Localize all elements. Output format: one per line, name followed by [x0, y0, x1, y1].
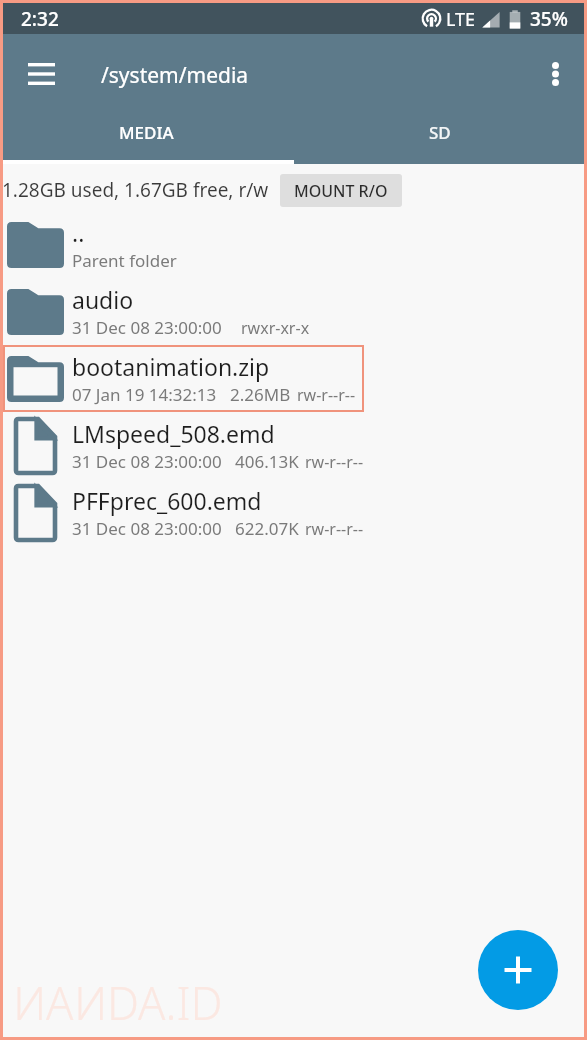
staticText: LTE: [446, 7, 476, 32]
button[interactable]: bootanimation.zip: [0, 345, 587, 412]
staticText: LMspeed_508.emd: [72, 418, 275, 449]
button[interactable]: More options: [532, 48, 578, 94]
staticText: A: [46, 972, 74, 1033]
staticText: 31 Dec 08 23:00:00: [72, 316, 222, 339]
button[interactable]: Menu: [18, 48, 64, 94]
staticText: N: [13, 972, 46, 1033]
staticText: PFFprec_600.emd: [72, 485, 262, 516]
staticText: rwxr-xr-x: [241, 317, 310, 339]
staticText: SD: [429, 121, 451, 144]
staticText: MOUNT R/O: [294, 180, 388, 202]
staticText: bootanimation.zip: [72, 351, 270, 382]
staticText: 1.28GB used, 1.67GB free, r/w: [2, 177, 269, 203]
staticText: ..: [72, 217, 85, 248]
staticText: 406.13K: [235, 450, 299, 473]
button[interactable]: MEDIA: [0, 104, 293, 160]
staticText: N: [74, 972, 107, 1033]
staticText: 2:32: [21, 6, 59, 32]
button[interactable]: MOUNT R/O: [280, 174, 402, 207]
staticText: 07 Jan 19 14:32:13: [72, 383, 217, 406]
staticText: 622.07K: [235, 517, 299, 540]
staticText: /system/media: [101, 61, 249, 90]
staticText: 35%: [530, 6, 568, 32]
staticText: 31 Dec 08 23:00:00: [72, 450, 222, 473]
staticText: rw-r--r--: [297, 384, 356, 406]
button[interactable]: SD: [293, 104, 587, 160]
staticText: rw-r--r--: [305, 451, 364, 473]
staticText: 31 Dec 08 23:00:00: [72, 517, 222, 540]
staticText: DA.ID: [107, 972, 223, 1033]
staticText: 2.26MB: [230, 383, 291, 406]
button[interactable]: audio: [0, 278, 587, 345]
staticText: MEDIA: [119, 121, 174, 144]
button[interactable]: PFFprec_600.emd: [0, 479, 587, 546]
button[interactable]: Add: [478, 930, 558, 1010]
button[interactable]: ..: [0, 211, 587, 278]
staticText: audio: [72, 284, 134, 315]
staticText: Parent folder: [72, 249, 177, 272]
staticText: rw-r--r--: [305, 518, 364, 540]
button[interactable]: LMspeed_508.emd: [0, 412, 587, 479]
